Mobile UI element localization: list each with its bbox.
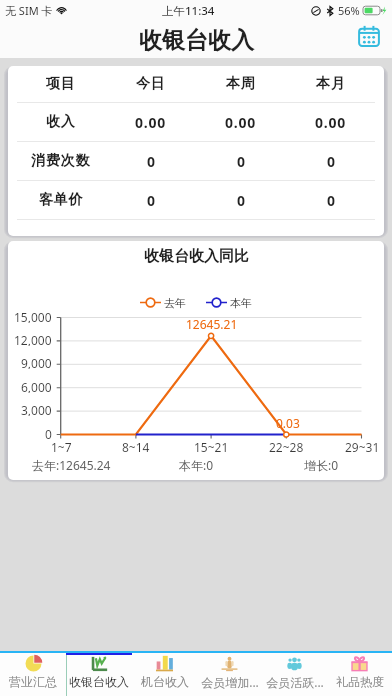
staticText: 0: [237, 191, 246, 210]
staticText: 上午11:34: [162, 3, 215, 19]
staticText: 增长:0: [304, 457, 339, 473]
staticText: 本年:0: [179, 457, 214, 473]
staticText: 营业汇总: [9, 674, 57, 689]
button[interactable]: Calendar: [354, 21, 384, 51]
staticText: 收银台收入: [69, 674, 129, 689]
staticText: 56%: [338, 3, 360, 18]
staticText: 收银台收入: [139, 26, 254, 55]
button[interactable]: 机台收入: [132, 653, 197, 696]
staticText: 1~7: [51, 439, 72, 453]
staticText: 3,000: [21, 402, 52, 416]
staticText: 去年:12645.24: [32, 457, 111, 473]
staticText: 本月: [316, 75, 346, 93]
staticText: 15,000: [14, 309, 52, 323]
staticText: 12645.21: [186, 316, 238, 330]
staticText: 0: [327, 191, 336, 210]
staticText: 0.00: [225, 113, 257, 132]
staticText: 0.00: [135, 113, 167, 132]
staticText: 9,000: [21, 355, 52, 369]
button[interactable]: 礼品热度: [327, 653, 392, 696]
staticText: 8~14: [122, 439, 150, 453]
staticText: 本年: [230, 296, 252, 309]
staticText: 0: [327, 152, 336, 171]
staticText: 机台收入: [141, 674, 189, 689]
staticText: 6,000: [21, 379, 52, 393]
staticText: 0.00: [315, 113, 347, 132]
staticText: 礼品热度: [336, 674, 384, 689]
staticText: 消费次数: [31, 152, 91, 170]
staticText: 22~28: [269, 439, 304, 453]
staticText: 客单价: [39, 191, 84, 209]
staticText: 15~21: [194, 439, 229, 453]
button[interactable]: 会员活跃...: [262, 653, 327, 696]
staticText: 本周: [226, 75, 256, 93]
staticText: 今日: [136, 75, 166, 93]
staticText: 0: [147, 152, 156, 171]
button[interactable]: 收银台收入: [66, 653, 132, 696]
staticText: 会员增加...: [201, 674, 259, 690]
staticText: 收银台收入同比: [144, 247, 249, 264]
staticText: 0: [237, 152, 246, 171]
staticText: 0: [147, 191, 156, 210]
staticText: 去年: [164, 296, 186, 309]
staticText: 29~31: [345, 439, 380, 453]
staticText: 0: [45, 426, 52, 440]
button[interactable]: 会员增加...: [197, 653, 262, 696]
staticText: 12,000: [14, 332, 52, 346]
staticText: 项目: [46, 75, 76, 93]
staticText: 收入: [46, 113, 76, 131]
button[interactable]: 营业汇总: [0, 653, 66, 696]
staticText: 无 SIM 卡: [5, 3, 53, 18]
staticText: 0.03: [276, 415, 300, 429]
staticText: 会员活跃...: [266, 674, 324, 690]
